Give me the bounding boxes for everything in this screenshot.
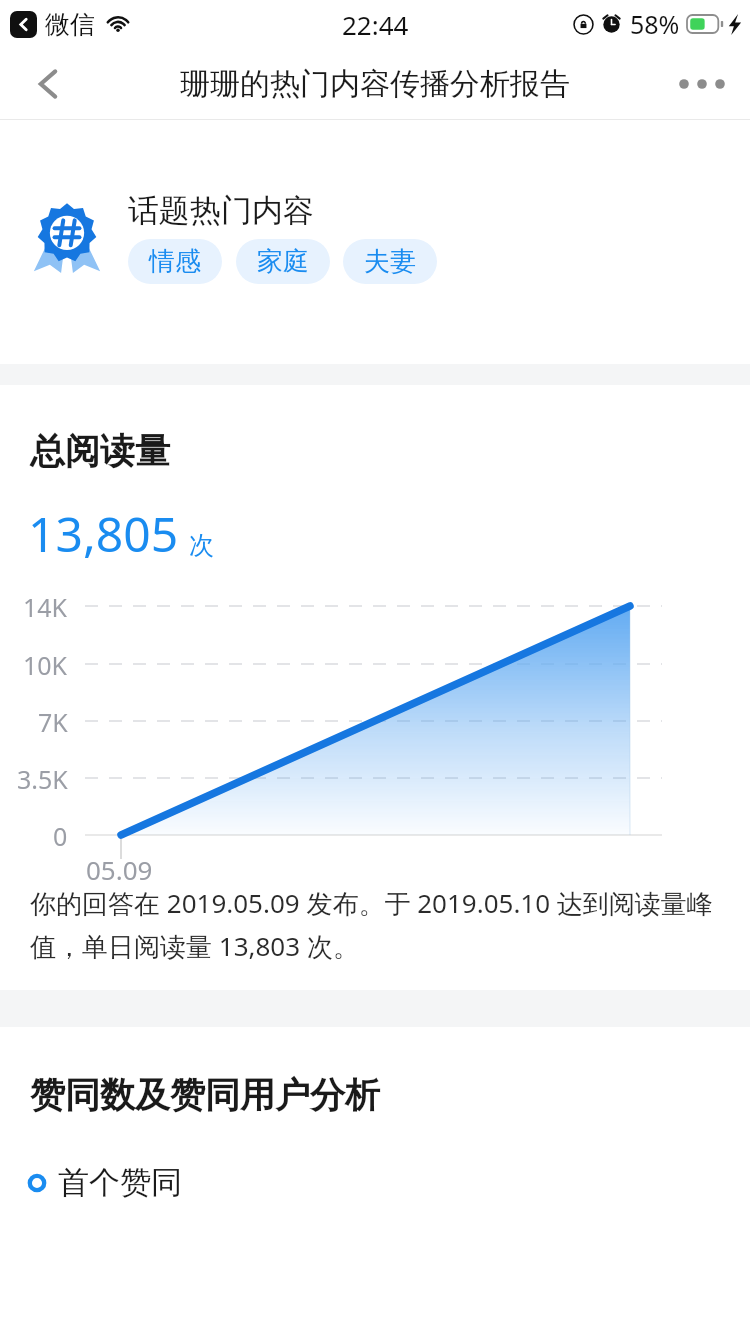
- staticText: 夫妻: [364, 245, 416, 278]
- button[interactable]: Back: [0, 48, 96, 120]
- staticText: 22:44: [342, 7, 409, 42]
- staticText: 微信: [45, 9, 95, 40]
- button[interactable]: 情感: [128, 239, 222, 284]
- staticText: 赞同数及赞同用户分析: [30, 1073, 380, 1117]
- button[interactable]: 话题热门内容: [0, 191, 750, 284]
- staticText: 总阅读量: [30, 429, 170, 473]
- staticText: 首个赞同: [58, 1163, 182, 1202]
- staticText: 你的回答在 2019.05.09 发布。于 2019.05.10 达到阅读量峰值…: [30, 885, 728, 964]
- staticText: 3.5K: [17, 762, 68, 796]
- staticText: 情感: [149, 245, 201, 278]
- staticText: 13,805: [28, 501, 179, 566]
- staticText: 0: [53, 819, 68, 853]
- button[interactable]: More options: [654, 48, 750, 120]
- staticText: 家庭: [257, 245, 309, 278]
- button[interactable]: 夫妻: [343, 239, 437, 284]
- staticText: 58%: [630, 7, 680, 41]
- staticText: 次: [189, 530, 214, 561]
- staticText: 10K: [23, 648, 68, 682]
- staticText: 05.09: [86, 852, 153, 887]
- staticText: 7K: [38, 705, 68, 739]
- button[interactable]: 家庭: [236, 239, 330, 284]
- staticText: 话题热门内容: [128, 191, 314, 230]
- button[interactable]: 首个赞同: [0, 1163, 750, 1202]
- staticText: 珊珊的热门内容传播分析报告: [180, 65, 570, 103]
- staticText: 14K: [23, 590, 68, 624]
